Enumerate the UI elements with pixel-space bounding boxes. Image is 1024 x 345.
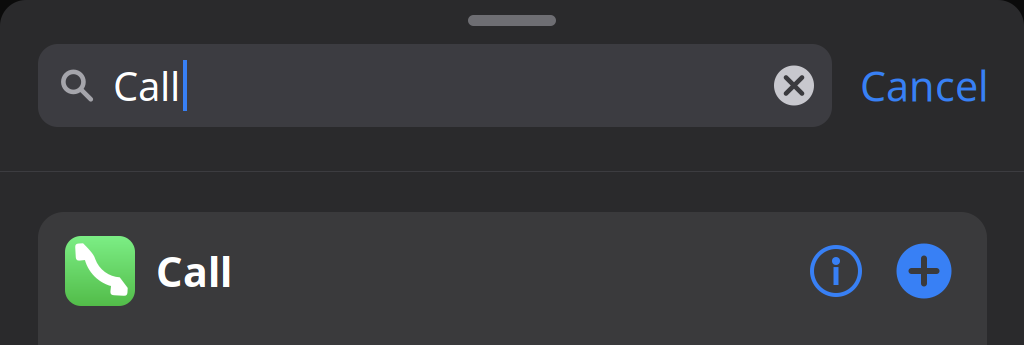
staticText: Call bbox=[113, 59, 180, 112]
button[interactable]: Add bbox=[887, 212, 961, 330]
button[interactable]: Details bbox=[785, 212, 887, 330]
staticText: Cancel bbox=[860, 58, 989, 113]
staticText: Call bbox=[156, 244, 232, 298]
button[interactable]: Clear text bbox=[756, 44, 832, 127]
button[interactable]: Call bbox=[38, 212, 987, 345]
button[interactable]: Cancel bbox=[832, 44, 1024, 127]
